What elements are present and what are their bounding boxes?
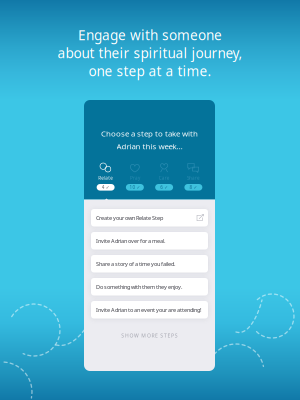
button[interactable]: Care [149, 162, 179, 191]
staticText: about their spiritual journey, [57, 44, 242, 62]
button[interactable]: Do something with them they enjoy. [91, 278, 208, 295]
staticText: SHOW MORE STEPS [121, 332, 178, 339]
staticText: Invite Adrian to an event your are atten… [96, 306, 201, 313]
staticText: Create your own Relate Step [96, 214, 163, 221]
staticText: Do something with them they enjoy. [96, 283, 182, 290]
staticText: 6 ✓ [160, 184, 168, 190]
staticText: 4 ✓ [102, 184, 110, 190]
button[interactable]: Share [179, 162, 208, 191]
staticText: Invite Adrian over for a meal. [96, 237, 165, 244]
button[interactable]: SHOW MORE STEPS [84, 330, 215, 340]
staticText: 8 ✓ [189, 184, 197, 190]
button[interactable]: Share a story of a time you failed. [91, 255, 208, 272]
staticText: Adrian this week… [116, 141, 182, 151]
button[interactable]: Relate [91, 162, 120, 191]
staticText: 10 ✓ [129, 184, 140, 190]
button[interactable]: Pray [120, 162, 149, 191]
staticText: Pray [130, 175, 140, 181]
staticText: Relate [98, 175, 113, 181]
staticText: one step at a time. [88, 62, 211, 80]
staticText: Care [159, 175, 170, 181]
staticText: Choose a step to take with [101, 128, 198, 139]
button[interactable]: Invite Adrian over for a meal. [91, 232, 208, 249]
staticText: Engage with someone [78, 26, 222, 44]
staticText: Share [187, 175, 200, 181]
staticText: Share a story of a time you failed. [96, 260, 175, 267]
button[interactable]: Invite Adrian to an event your are atten… [91, 301, 208, 318]
button[interactable]: Create your own Relate Step [91, 209, 208, 226]
